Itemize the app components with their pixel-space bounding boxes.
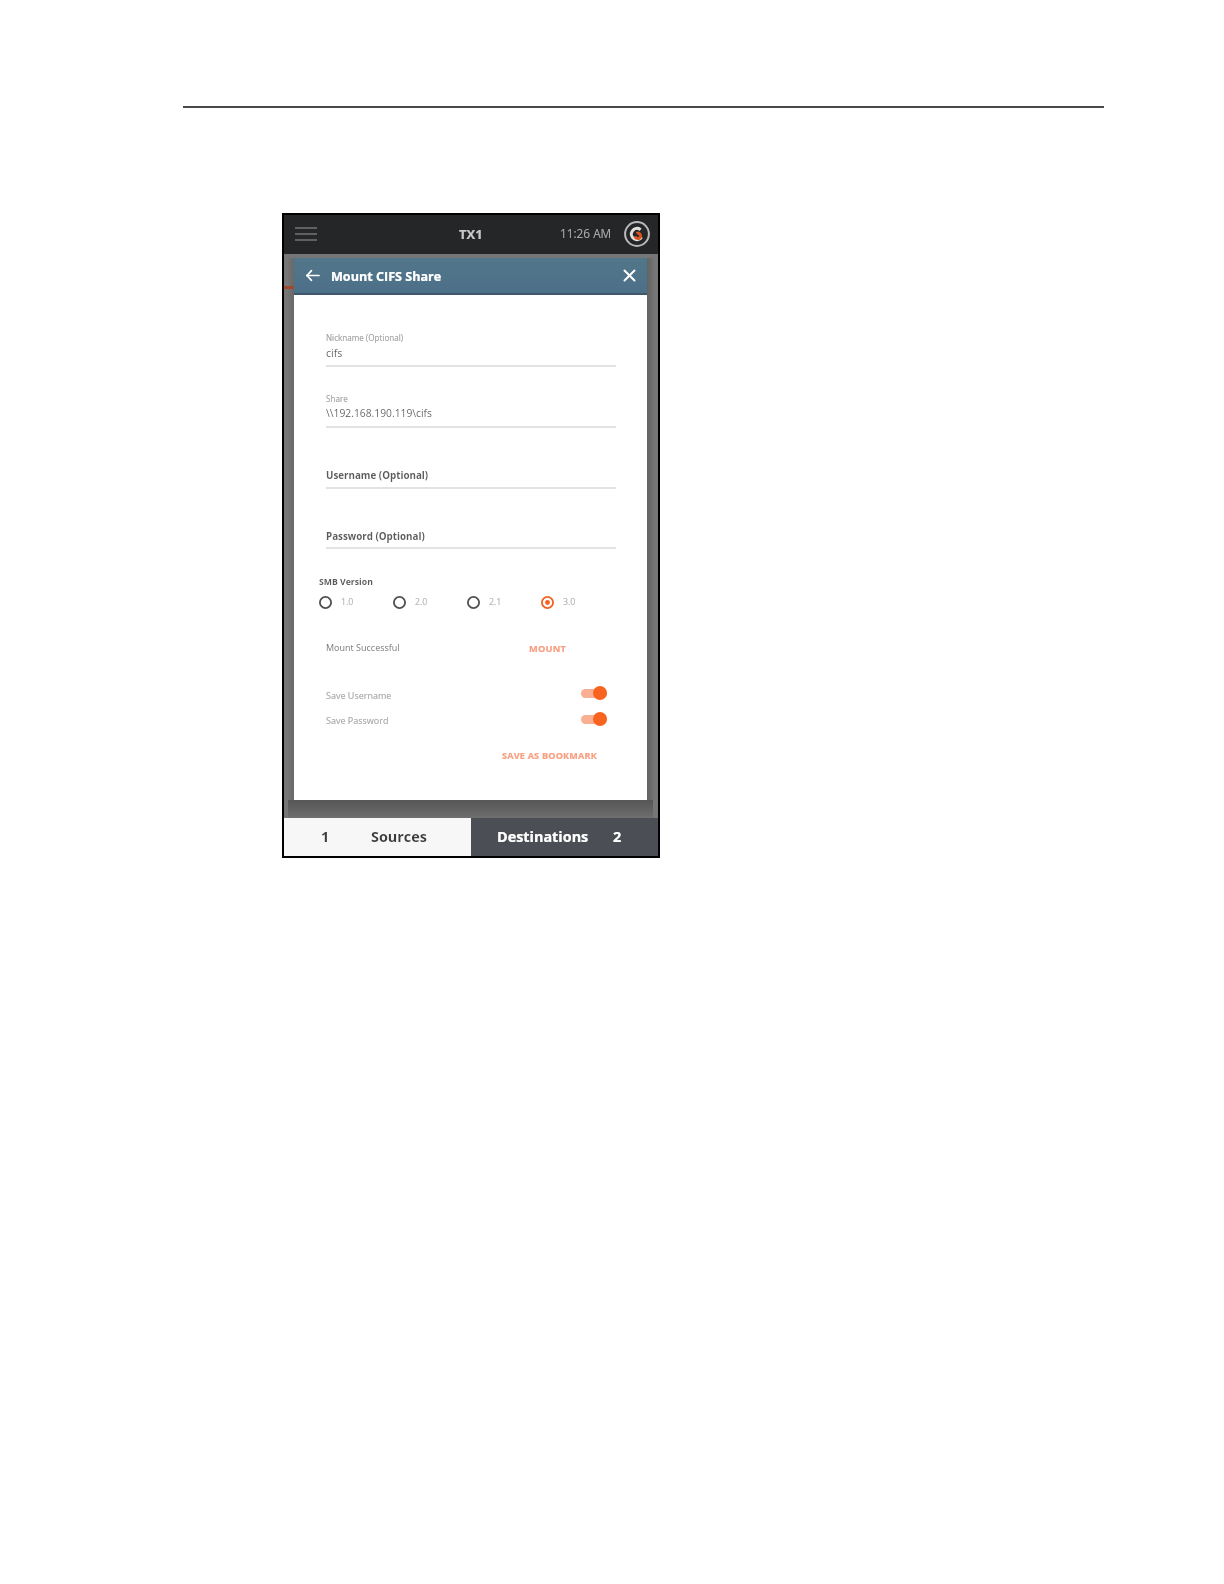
button[interactable]: MOUNT <box>529 642 567 655</box>
staticText: 2 <box>613 827 622 847</box>
staticText: Save Username <box>326 689 392 701</box>
button[interactable]: 2.1 <box>467 593 512 611</box>
staticText: Share <box>326 393 348 404</box>
button[interactable]: Save Password <box>581 711 613 727</box>
staticText: 1 <box>321 827 330 847</box>
staticText: 3.0 <box>563 596 576 608</box>
staticText: Mount CIFS Share <box>331 268 442 285</box>
button[interactable]: 3.0 <box>541 593 586 611</box>
button[interactable]: Account <box>624 221 650 247</box>
button[interactable]: 2.0 <box>393 593 438 611</box>
staticText: SAVE AS BOOKMARK <box>502 749 598 761</box>
button[interactable]: Open navigation menu <box>290 222 321 245</box>
button[interactable]: Back <box>300 263 325 288</box>
staticText: Password (Optional) <box>326 530 425 543</box>
button[interactable]: Save Username <box>581 685 613 701</box>
staticText: Nickname (Optional) <box>326 332 404 343</box>
staticText: Save Password <box>326 714 389 726</box>
staticText: 2.1 <box>489 596 502 608</box>
staticText: 2.0 <box>415 596 428 608</box>
staticText: Destinations <box>497 827 589 847</box>
staticText: \\192.168.190.119\cifs <box>326 406 432 420</box>
staticText: Mount Successful <box>326 641 400 653</box>
button[interactable]: Destinations <box>471 818 658 856</box>
button[interactable]: 1 <box>284 818 471 856</box>
staticText: 11:26 AM <box>560 225 612 241</box>
staticText: 1.0 <box>341 596 354 608</box>
button[interactable]: SAVE AS BOOKMARK <box>502 749 598 761</box>
staticText: cifs <box>326 346 343 360</box>
staticText: MOUNT <box>529 642 567 655</box>
button[interactable]: Close <box>618 264 641 287</box>
staticText: Sources <box>371 827 427 847</box>
staticText: Username (Optional) <box>326 469 429 482</box>
button[interactable]: 1.0 <box>319 593 364 611</box>
staticText: SMB Version <box>319 576 373 588</box>
staticText: TX1 <box>459 225 483 243</box>
